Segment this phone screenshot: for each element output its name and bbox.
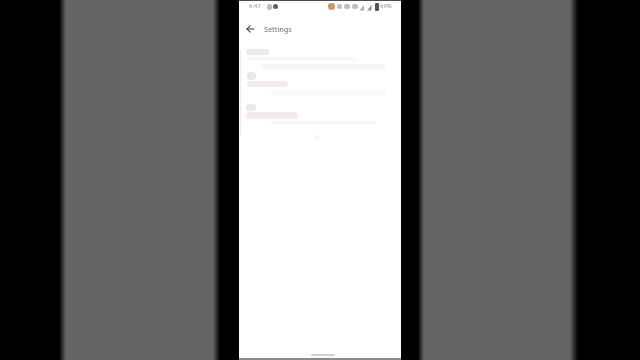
button[interactable] <box>239 68 401 98</box>
staticText: 69% <box>380 2 392 10</box>
staticText: 6:47 <box>249 2 261 10</box>
button[interactable]: Settings <box>264 24 292 34</box>
button[interactable] <box>239 100 401 128</box>
button[interactable] <box>243 22 258 37</box>
